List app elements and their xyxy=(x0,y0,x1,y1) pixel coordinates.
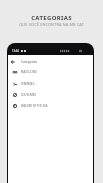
button[interactable]: FEMININO xyxy=(7,78,94,89)
staticText: 13:44 xyxy=(12,49,19,53)
staticText: WASHED BY THE SEA xyxy=(21,104,48,108)
button[interactable]: SOUVENIRS xyxy=(7,89,94,100)
button[interactable]: WASHED BY THE SEA xyxy=(7,100,94,111)
staticText: CATEGORIAS xyxy=(31,14,72,22)
staticText: SOUVENIRS xyxy=(21,93,36,97)
button[interactable]: Back xyxy=(9,58,38,66)
button[interactable]: MASCULINO xyxy=(7,66,94,77)
staticText: MASCULINO xyxy=(21,70,37,74)
staticText: QUE VOCÊ ENCONTRA NA MR CAT xyxy=(19,22,84,27)
staticText: FEMININO xyxy=(21,82,35,86)
other: Back xyxy=(9,58,17,66)
staticText: Categorias xyxy=(21,60,38,64)
